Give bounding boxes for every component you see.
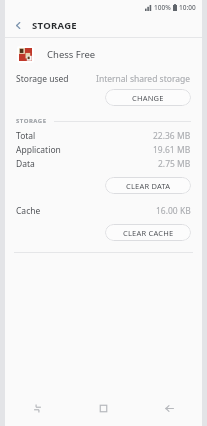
staticText: 22.36 MB xyxy=(153,130,191,142)
staticText: 16.00 KB xyxy=(156,205,191,217)
staticText: CLEAR CACHE xyxy=(123,228,174,238)
staticText: CHANGE xyxy=(132,93,164,103)
staticText: 2.75 MB xyxy=(158,158,191,170)
staticText: 100% xyxy=(154,3,171,12)
staticText: STORAGE xyxy=(16,117,47,125)
button[interactable]: Storage used xyxy=(5,72,202,86)
button[interactable]: Total xyxy=(5,129,202,143)
staticText: Cache xyxy=(16,205,41,217)
button[interactable]: Navigate up xyxy=(5,14,32,37)
staticText: CLEAR DATA xyxy=(126,181,171,191)
staticText: Total xyxy=(16,130,36,142)
button[interactable]: Data xyxy=(5,157,202,171)
button[interactable]: Home xyxy=(70,394,136,422)
staticText: Internal shared storage xyxy=(96,73,191,85)
button[interactable]: Chess Free xyxy=(5,38,202,70)
staticText: 19.61 MB xyxy=(153,144,191,156)
button[interactable]: CLEAR CACHE xyxy=(105,224,191,241)
button[interactable]: Recents xyxy=(5,394,70,422)
staticText: STORAGE xyxy=(32,19,77,32)
button[interactable]: Cache xyxy=(5,204,202,218)
button[interactable]: CHANGE xyxy=(105,89,191,106)
button[interactable]: CLEAR DATA xyxy=(105,177,191,194)
staticText: 10:00 xyxy=(179,3,196,12)
staticText: Storage used xyxy=(16,73,69,85)
staticText: Chess Free xyxy=(47,48,96,61)
staticText: Application xyxy=(16,144,61,156)
button[interactable]: Back xyxy=(136,394,202,422)
button[interactable]: Application xyxy=(5,143,202,157)
staticText: Data xyxy=(16,158,35,170)
